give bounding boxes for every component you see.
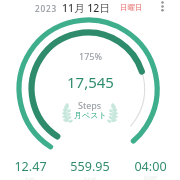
staticText: 時間 xyxy=(144,175,157,180)
staticText: kcal xyxy=(84,175,96,180)
staticText: 11月 12日 xyxy=(62,1,110,15)
staticText: 04:00 xyxy=(134,158,167,175)
staticText: 559.95 xyxy=(70,158,110,175)
staticText: Steps xyxy=(78,99,102,111)
staticText: km xyxy=(25,175,35,180)
staticText: 17,545 xyxy=(67,72,114,92)
staticText: 月ベスト xyxy=(74,110,107,120)
button[interactable]: 12.47 xyxy=(0,158,60,180)
staticText: 12.47 xyxy=(14,158,47,175)
button[interactable]: More options xyxy=(154,0,171,17)
button[interactable]: 04:00 xyxy=(120,158,180,180)
staticText: 175% xyxy=(79,50,102,62)
staticText: 日曜日 xyxy=(120,3,143,12)
button[interactable]: 559.95 xyxy=(60,158,120,180)
staticText: 2023 xyxy=(35,3,58,14)
